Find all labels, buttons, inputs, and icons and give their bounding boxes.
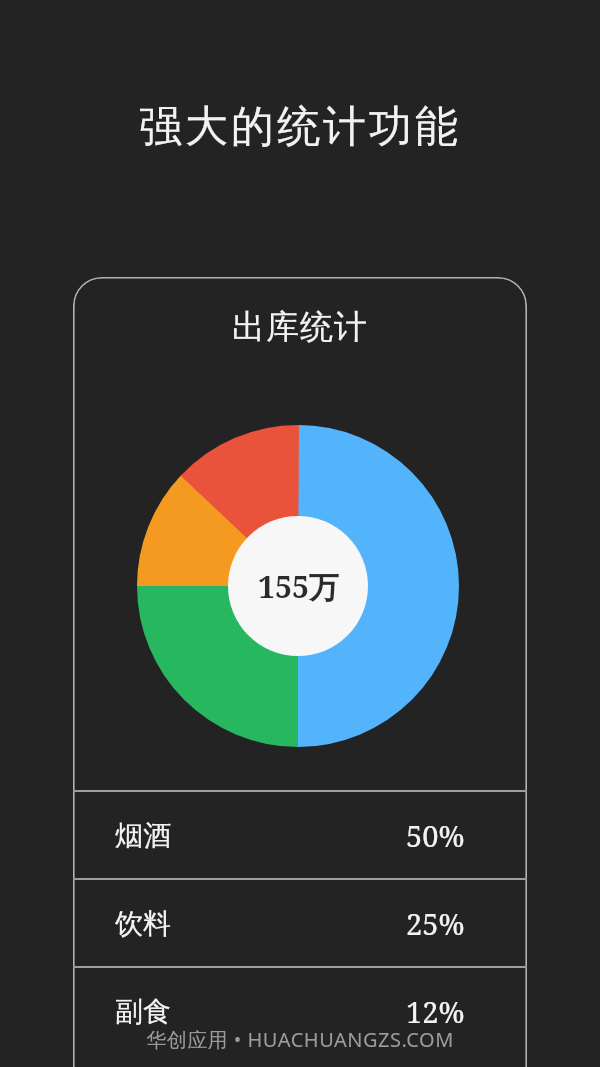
staticText: 烟酒 [115, 818, 171, 853]
button[interactable]: 烟酒 [73, 792, 527, 878]
staticText: 华创应用 • HUACHUANGZS.COM [0, 1026, 600, 1053]
staticText: 25% [406, 904, 465, 943]
staticText: 饮料 [115, 906, 171, 941]
staticText: 12% [406, 992, 465, 1031]
button[interactable]: 副食 [73, 968, 527, 1054]
staticText: 强大的统计功能 [0, 100, 600, 154]
other: 出库统计饼图 [137, 425, 459, 747]
staticText: 50% [406, 816, 465, 855]
staticText: 出库统计 [73, 306, 527, 348]
staticText: 155万 [258, 566, 339, 607]
button[interactable]: 饮料 [73, 880, 527, 966]
staticText: 副食 [115, 994, 171, 1029]
